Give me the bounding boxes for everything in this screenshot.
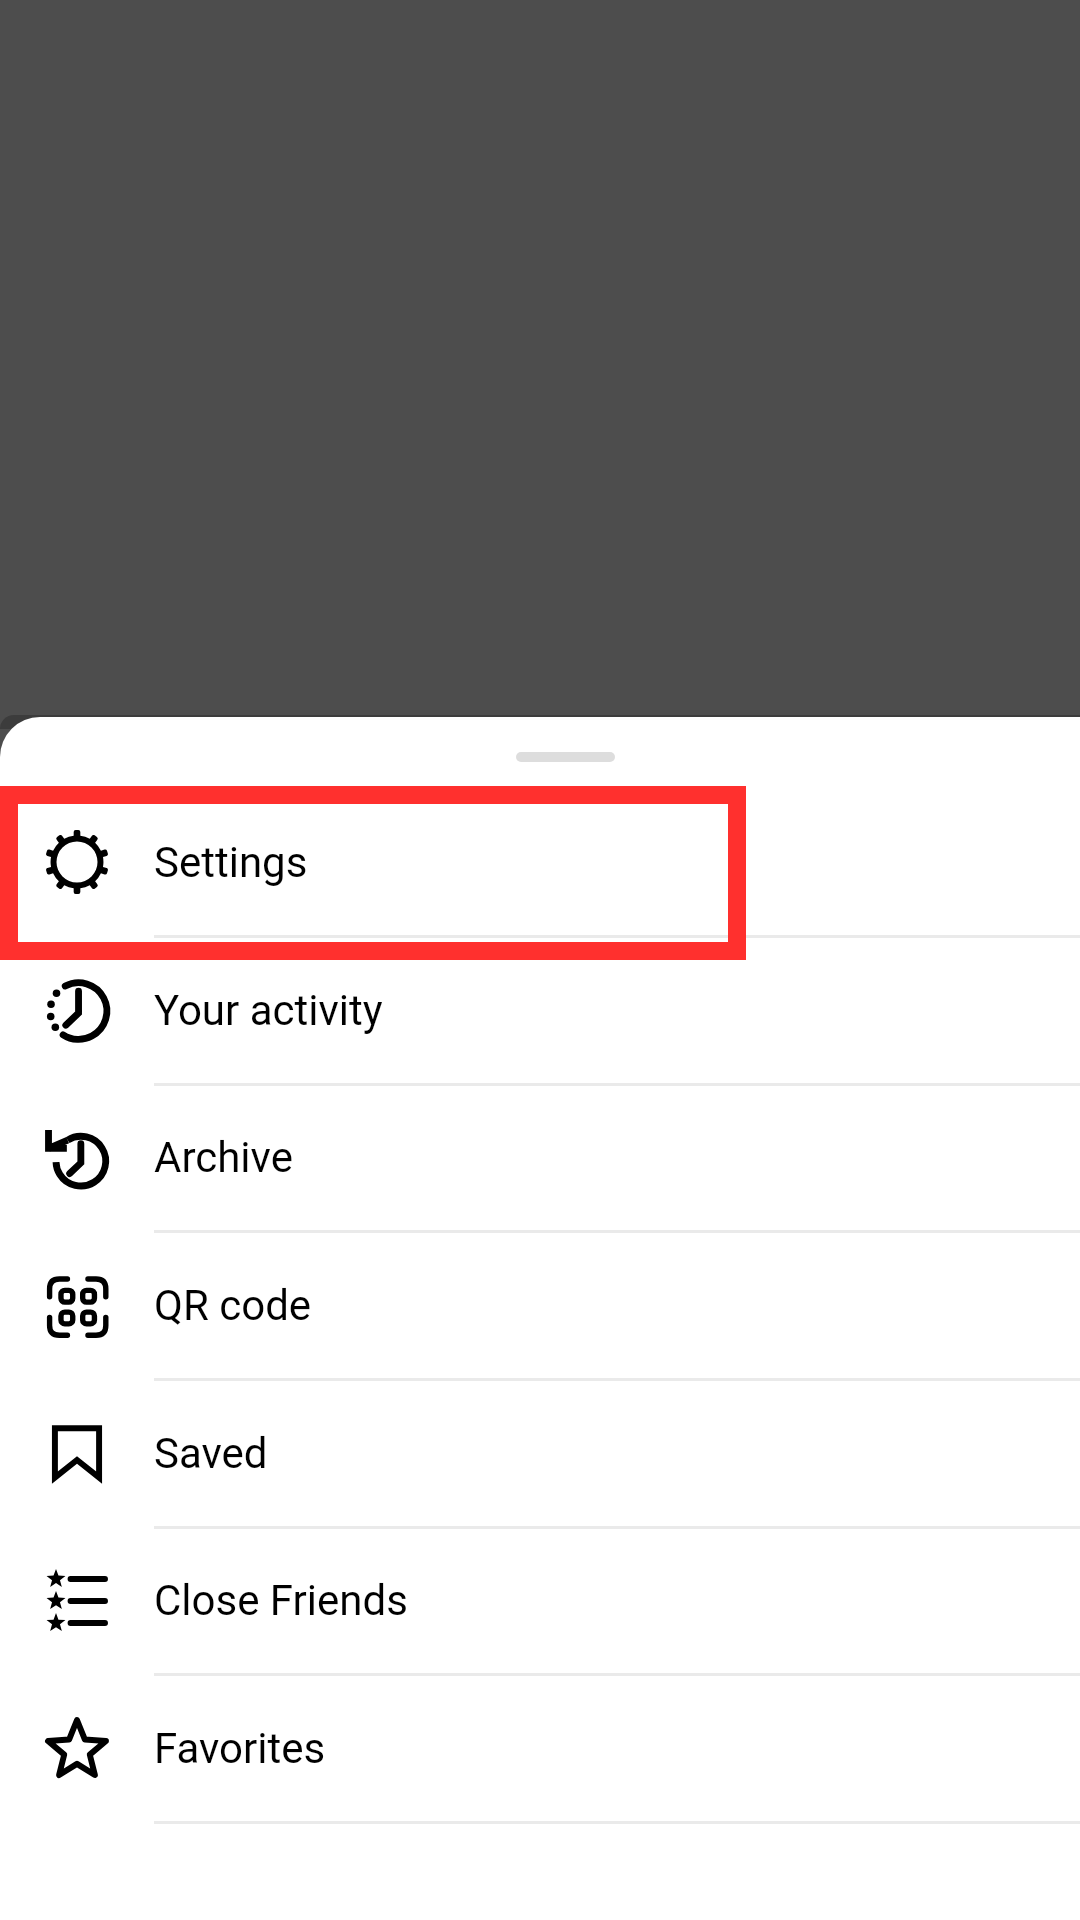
staticText: Saved <box>154 1429 268 1478</box>
button[interactable]: Close Friends <box>0 1527 1080 1674</box>
button[interactable]: Archive <box>0 1084 1080 1231</box>
button[interactable]: Settings <box>0 788 1080 936</box>
staticText: Close Friends <box>154 1576 408 1625</box>
button[interactable]: QR code <box>0 1231 1080 1379</box>
staticText: Settings <box>154 838 308 887</box>
staticText: Archive <box>154 1133 293 1182</box>
button[interactable]: Favorites <box>0 1674 1080 1822</box>
staticText: Favorites <box>154 1724 326 1773</box>
button[interactable]: Your activity <box>0 936 1080 1084</box>
button[interactable]: Saved <box>0 1379 1080 1527</box>
staticText: QR code <box>154 1281 312 1330</box>
staticText: Your activity <box>154 986 383 1035</box>
